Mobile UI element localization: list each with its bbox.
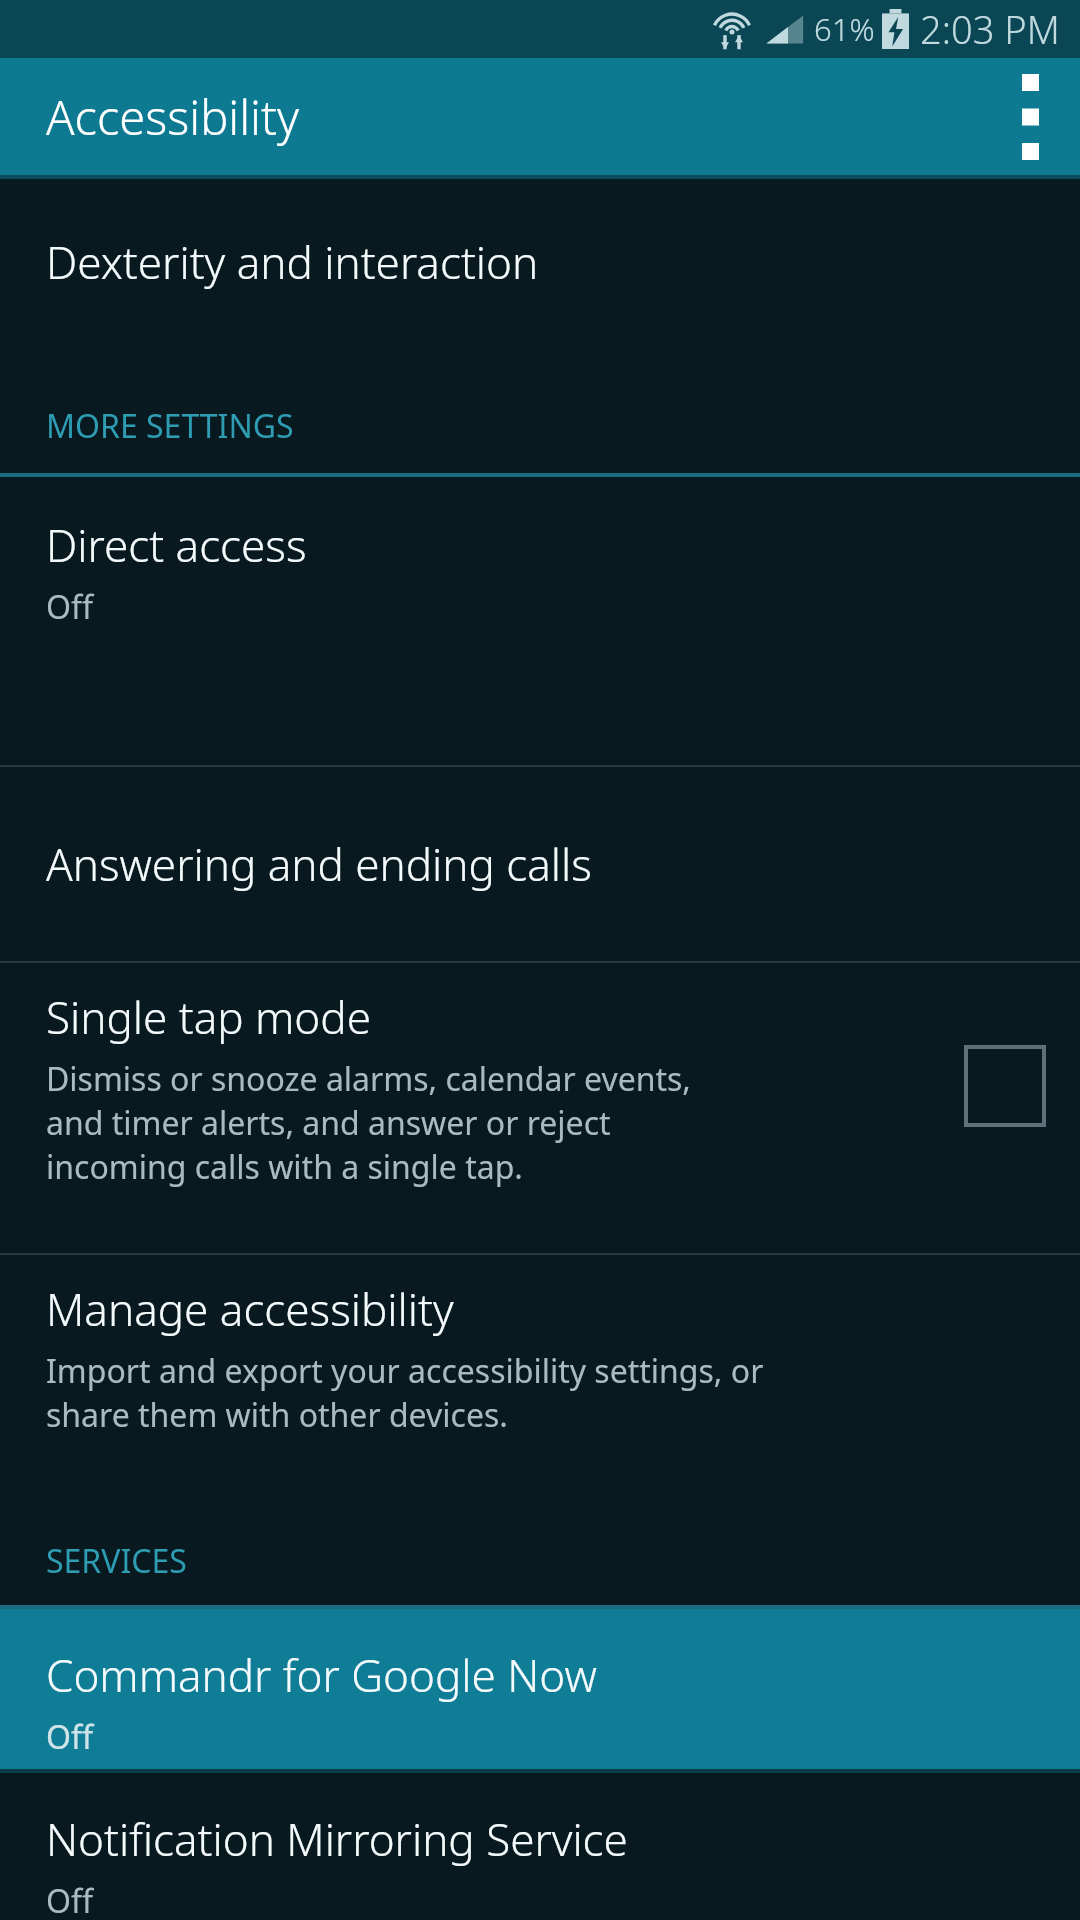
button[interactable]: Single tap mode checkbox [966,1047,1044,1125]
staticText: Off [46,1879,94,1920]
staticText: Accessibility [46,85,300,149]
staticText: share them with other devices. [46,1393,508,1437]
button[interactable]: Single tap mode [0,963,1080,1253]
staticText: Manage accessibility [46,1279,454,1339]
button[interactable]: Dexterity and interaction [0,179,1080,344]
staticText: Off [46,585,94,629]
staticText: and timer alerts, and answer or reject [46,1101,611,1145]
staticText: 61% [814,8,875,50]
button[interactable]: Commandr for Google Now [0,1609,1080,1769]
staticText: Commandr for Google Now [46,1645,597,1705]
button[interactable]: More options [980,58,1080,175]
staticText: 2:03 PM [920,3,1060,55]
staticText: Notification Mirroring Service [46,1809,628,1869]
staticText: MORE SETTINGS [46,404,294,448]
button[interactable]: Manage accessibility [0,1255,1080,1501]
staticText: incoming calls with a single tap. [46,1145,523,1189]
staticText: Off [46,1715,94,1759]
staticText: Answering and ending calls [46,834,592,894]
staticText: Single tap mode [46,987,371,1047]
button[interactable]: Direct access [0,477,1080,765]
button[interactable]: Notification Mirroring Service [0,1773,1080,1920]
staticText: Import and export your accessibility set… [46,1349,764,1393]
staticText: Dexterity and interaction [46,232,539,292]
staticText: SERVICES [46,1539,187,1583]
staticText: Direct access [46,515,307,575]
staticText: Dismiss or snooze alarms, calendar event… [46,1057,691,1101]
button[interactable]: Answering and ending calls [0,767,1080,961]
